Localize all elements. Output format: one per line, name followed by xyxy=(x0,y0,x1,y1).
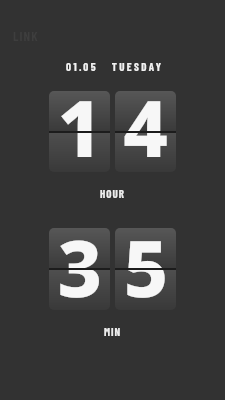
staticText: MIN xyxy=(104,325,122,338)
staticText: 5 xyxy=(124,228,168,310)
button[interactable]: 1 xyxy=(49,91,110,172)
staticText: 3 xyxy=(58,228,102,310)
staticText: 4 xyxy=(124,91,168,172)
staticText: 01.05 TUESDAY xyxy=(66,60,164,73)
button[interactable]: 4 xyxy=(115,91,176,172)
staticText: LINK xyxy=(13,28,39,44)
staticText: HOUR xyxy=(100,187,125,200)
staticText: 1 xyxy=(58,91,102,172)
button[interactable]: 5 xyxy=(115,228,176,310)
button[interactable]: 3 xyxy=(49,228,110,310)
